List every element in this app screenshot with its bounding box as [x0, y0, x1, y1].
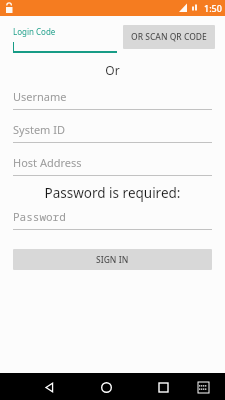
staticText: Login Code [13, 26, 56, 37]
button[interactable]: Back [38, 376, 60, 398]
button[interactable]: Recent apps [152, 376, 174, 398]
staticText: SIGN IN [96, 254, 129, 266]
staticText: System ID [13, 122, 65, 137]
staticText: Password is required: [0, 184, 225, 202]
button[interactable]: Login Code [13, 26, 117, 53]
button[interactable]: Home [95, 376, 117, 398]
staticText: 1:50 [204, 2, 222, 14]
staticText: OR SCAN QR CODE [131, 31, 207, 43]
staticText: Password [13, 209, 66, 224]
button[interactable]: Username [13, 89, 212, 110]
button[interactable]: System ID [13, 122, 212, 143]
button[interactable]: Host Address [13, 155, 212, 176]
button[interactable]: SIGN IN [13, 249, 212, 270]
button[interactable]: Password [13, 209, 212, 230]
button[interactable]: Keyboard [193, 377, 213, 397]
staticText: Or [0, 62, 225, 78]
staticText: Host Address [13, 155, 82, 170]
staticText: Username [13, 89, 67, 104]
button[interactable]: OR SCAN QR CODE [123, 25, 215, 49]
